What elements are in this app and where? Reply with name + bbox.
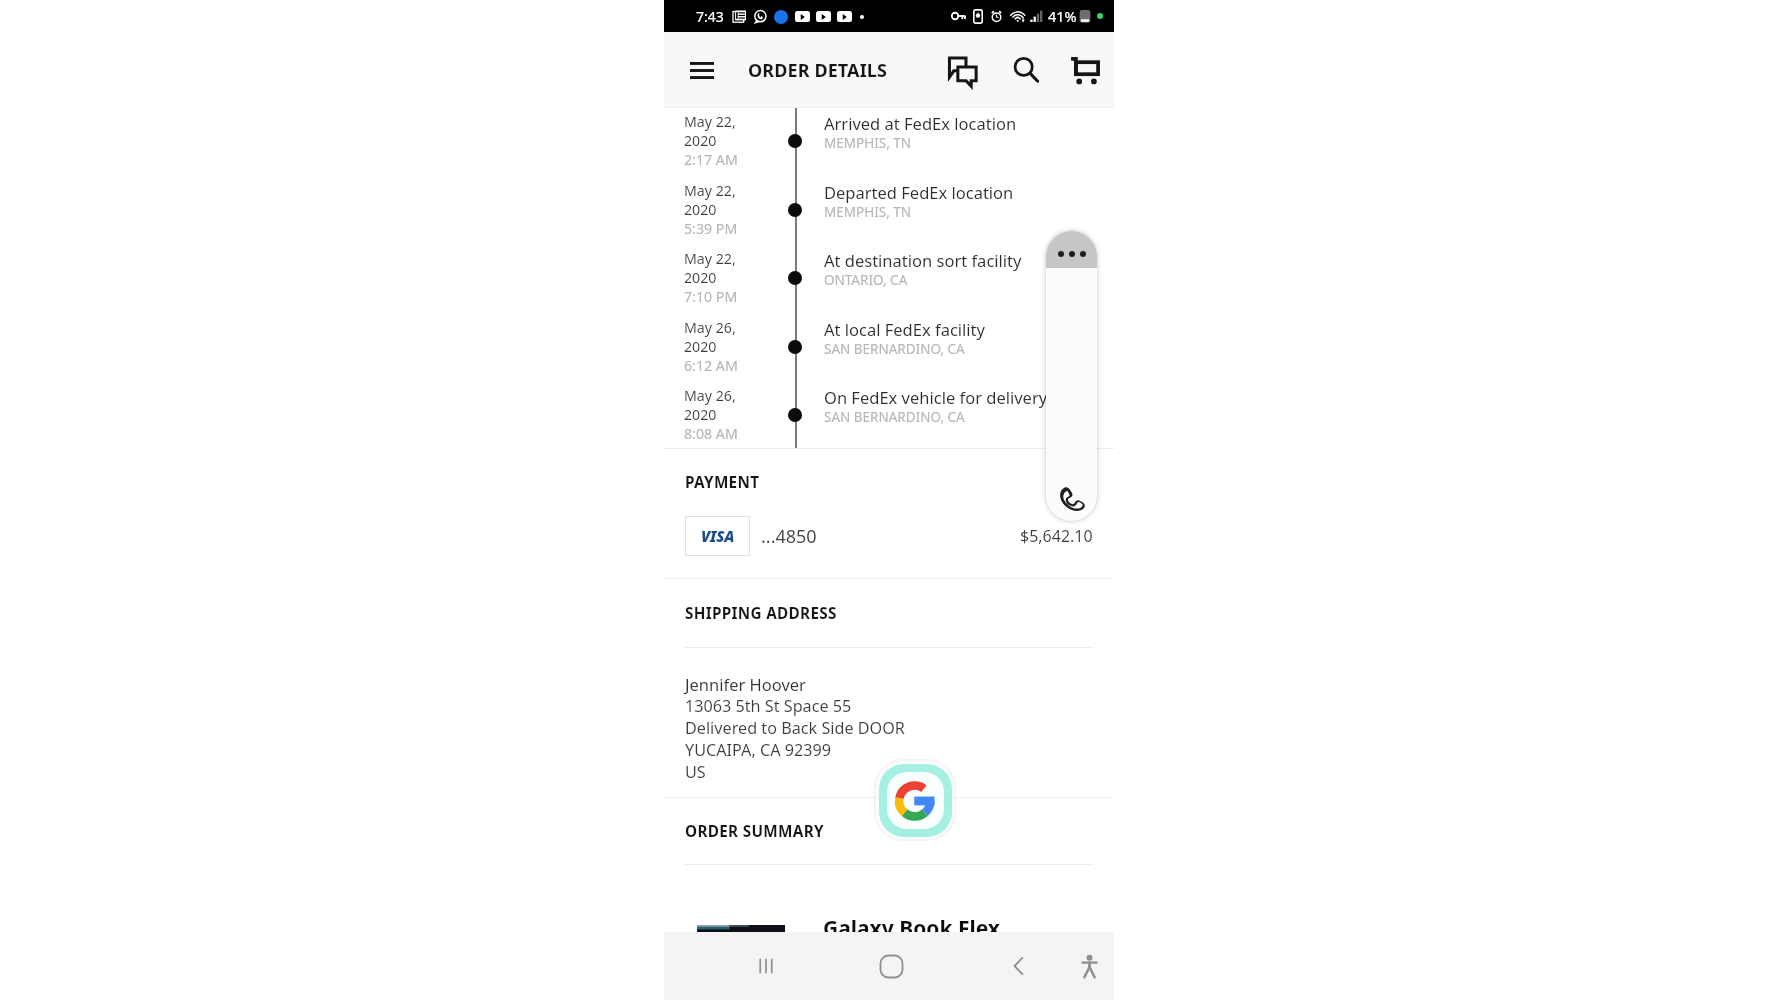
staticText: 8:08 AM [684, 424, 738, 443]
button[interactable]: Recents [740, 932, 792, 1000]
button[interactable]: Home [865, 932, 917, 1000]
staticText: At local FedEx facility [824, 318, 985, 340]
staticText: 7:43 [696, 7, 724, 26]
staticText: MEMPHIS, TN [824, 134, 912, 152]
button[interactable]: Back [992, 932, 1044, 1000]
staticText: SHIPPING ADDRESS [685, 603, 837, 624]
staticText: ORDER SUMMARY [685, 821, 824, 842]
staticText: ONTARIO, CA [824, 271, 908, 289]
button[interactable]: Google Assistant [873, 758, 957, 842]
staticText: ...4850 [761, 524, 817, 549]
staticText: At destination sort facility [824, 249, 1022, 271]
staticText: 41% [1048, 6, 1077, 26]
staticText: MEMPHIS, TN [824, 203, 912, 221]
staticText: YUCAIPA, CA 92399 [685, 739, 832, 761]
button[interactable]: Call support [1046, 231, 1097, 521]
staticText: 7:10 PM [684, 287, 738, 306]
staticText: VISA [701, 526, 735, 546]
staticText: 6:12 AM [684, 356, 738, 375]
staticText: May 26, 2020 [684, 386, 736, 424]
staticText: 2:17 AM [684, 150, 738, 169]
staticText: SAN BERNARDINO, CA [824, 408, 965, 426]
staticText: Departed FedEx location [824, 181, 1014, 203]
button[interactable]: Cart [1062, 48, 1106, 92]
staticText: May 22, 2020 [684, 112, 736, 150]
staticText: May 22, 2020 [684, 249, 736, 287]
staticText: Jennifer Hoover [685, 673, 806, 695]
staticText: 5:39 PM [684, 219, 738, 238]
staticText: Delivered to Back Side DOOR [685, 717, 905, 739]
button[interactable]: Search [1004, 48, 1048, 92]
staticText: May 22, 2020 [684, 181, 736, 219]
button[interactable]: Chat [940, 48, 984, 92]
staticText: May 26, 2020 [684, 318, 736, 356]
staticText: PAYMENT [685, 472, 760, 493]
staticText: US [685, 761, 706, 783]
staticText: $5,642.10 [1020, 525, 1093, 547]
button[interactable]: Menu [683, 51, 721, 89]
button[interactable]: Accessibility [1063, 932, 1115, 1000]
staticText: Galaxy Book Flex [823, 914, 1000, 943]
staticText: Arrived at FedEx location [824, 112, 1017, 134]
staticText: 13063 5th St Space 55 [685, 695, 852, 717]
staticText: On FedEx vehicle for delivery [824, 386, 1048, 408]
staticText: SAN BERNARDINO, CA [824, 340, 965, 358]
staticText: ORDER DETAILS [748, 58, 887, 83]
